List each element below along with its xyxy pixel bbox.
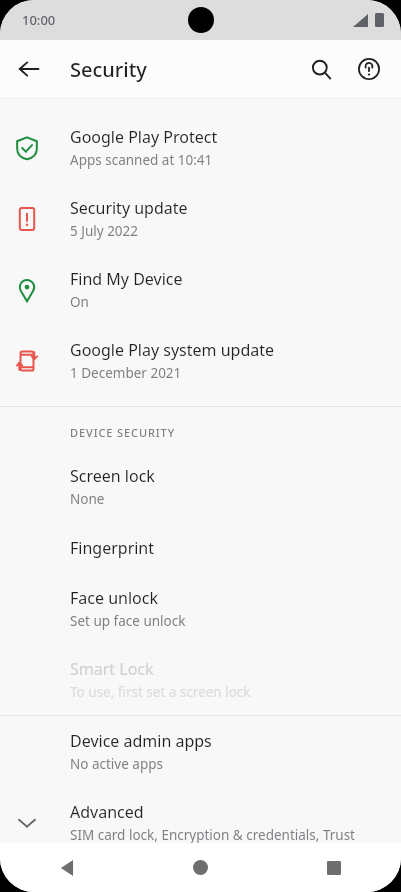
button[interactable]: Search — [297, 45, 345, 93]
staticText: None — [70, 490, 105, 508]
staticText: Advanced — [70, 801, 144, 823]
button[interactable]: Back — [5, 45, 53, 93]
staticText: Device admin apps — [70, 730, 212, 752]
staticText: Smart Lock — [70, 658, 154, 680]
staticText: Fingerprint — [70, 537, 155, 559]
staticText: 5 July 2022 — [70, 222, 139, 240]
staticText: Security — [70, 56, 147, 83]
button[interactable]: Recent apps — [267, 843, 401, 892]
staticText: No active apps — [70, 755, 163, 773]
staticText: Face unlock — [70, 587, 158, 609]
staticText: Set up face unlock — [70, 612, 186, 630]
button[interactable]: Find My Device — [0, 254, 401, 325]
button[interactable]: Security update — [0, 183, 401, 254]
button[interactable]: Face unlock — [0, 573, 401, 644]
button[interactable]: Back — [0, 843, 133, 892]
staticText: To use, first set a screen lock — [70, 683, 251, 701]
button[interactable]: Fingerprint — [0, 522, 401, 573]
button[interactable]: Device admin apps — [0, 716, 401, 787]
staticText: Google Play Protect — [70, 126, 218, 148]
staticText: Google Play system update — [70, 339, 275, 361]
staticText: 10:00 — [22, 11, 56, 29]
staticText: Apps scanned at 10:41 — [70, 151, 213, 169]
staticText: Screen lock — [70, 465, 155, 487]
staticText: DEVICE SECURITY — [70, 425, 176, 440]
button[interactable]: Home — [133, 843, 267, 892]
button[interactable]: Advanced — [0, 787, 401, 858]
staticText: On — [70, 293, 89, 311]
button[interactable]: Help — [345, 45, 393, 93]
button[interactable]: Google Play Protect — [0, 112, 401, 183]
staticText: Security update — [70, 197, 188, 219]
staticText: Find My Device — [70, 268, 183, 290]
button[interactable]: Screen lock — [0, 451, 401, 522]
button[interactable]: Google Play system update — [0, 325, 401, 396]
button[interactable]: Smart Lock — [0, 644, 401, 715]
staticText: SIM card lock, Encryption & credentials,… — [70, 826, 387, 844]
staticText: 1 December 2021 — [70, 364, 182, 382]
